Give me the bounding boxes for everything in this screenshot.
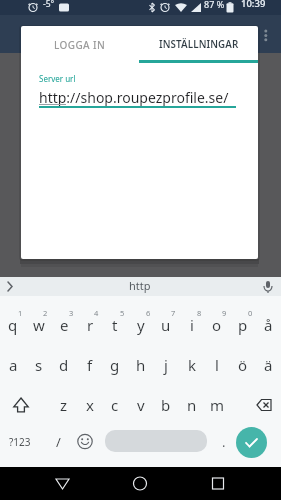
staticText: b (161, 395, 171, 415)
staticText: p (238, 315, 248, 335)
button[interactable]: m (204, 386, 230, 424)
button[interactable] (72, 422, 98, 461)
button[interactable]: q (0, 308, 26, 342)
staticText: / (56, 433, 61, 451)
button[interactable]: p (230, 308, 256, 342)
button[interactable]: t (102, 308, 128, 342)
staticText: r (87, 315, 94, 335)
staticText: c (111, 395, 119, 415)
button[interactable]: i (179, 308, 205, 342)
staticText: n (187, 395, 197, 415)
button[interactable]: k (179, 346, 205, 384)
button[interactable]: ?123 (0, 422, 40, 461)
staticText: 2 (43, 308, 48, 318)
staticText: f (87, 355, 93, 375)
staticText: m (210, 395, 225, 415)
button[interactable] (187, 467, 281, 500)
staticText: v (137, 395, 145, 415)
button[interactable] (0, 467, 93, 500)
staticText: a (9, 355, 18, 375)
staticText: x (86, 395, 94, 415)
staticText: 4 (94, 308, 99, 318)
button[interactable] (0, 277, 20, 296)
button[interactable] (94, 277, 187, 296)
staticText: 9 (222, 308, 227, 318)
button[interactable] (93, 467, 187, 500)
button[interactable] (105, 430, 207, 452)
button[interactable]: ä (255, 346, 281, 384)
staticText: INSTÄLLNINGAR (159, 38, 239, 51)
button[interactable]: INSTÄLLNINGAR (139, 26, 258, 63)
button[interactable] (0, 386, 38, 424)
staticText: h (136, 355, 146, 375)
staticText: q (8, 315, 18, 335)
staticText: 7 (171, 308, 176, 318)
button[interactable]: w (26, 308, 52, 342)
button[interactable]: LOGGA IN (21, 26, 139, 63)
staticText: ö (238, 355, 248, 375)
staticText: 87 % (204, 0, 225, 10)
button[interactable]: f (77, 346, 103, 384)
button[interactable]: d (51, 346, 77, 384)
staticText: i (190, 315, 194, 335)
staticText: ä (264, 355, 273, 375)
button[interactable]: . (213, 422, 235, 461)
staticText: http (129, 278, 151, 293)
staticText: LOGGA IN (54, 38, 106, 52)
button[interactable]: r (77, 308, 103, 342)
staticText: l (215, 355, 219, 375)
button[interactable]: ö (230, 346, 256, 384)
button[interactable] (258, 277, 281, 296)
staticText: u (161, 315, 171, 335)
button[interactable]: b (153, 386, 179, 424)
button[interactable]: http://shop.roupezprofile.se/ (39, 88, 229, 107)
staticText: 8 (197, 308, 202, 318)
button[interactable]: v (128, 386, 154, 424)
button[interactable]: n (179, 386, 205, 424)
button[interactable] (236, 427, 267, 458)
button[interactable]: h (128, 346, 154, 384)
staticText: Server url (39, 73, 76, 84)
staticText: o (212, 315, 222, 335)
button[interactable]: å (255, 308, 281, 342)
button[interactable]: l (204, 346, 230, 384)
button[interactable]: a (0, 346, 26, 384)
staticText: 1 (18, 308, 23, 318)
staticText: ?123 (9, 435, 31, 449)
staticText: y (137, 315, 145, 335)
button[interactable]: e (51, 308, 77, 342)
staticText: w (33, 315, 45, 335)
button[interactable]: s (26, 346, 52, 384)
staticText: k (188, 355, 197, 375)
button[interactable]: / (45, 422, 71, 461)
staticText: j (164, 355, 168, 375)
staticText: 6 (146, 308, 151, 318)
staticText: e (60, 315, 69, 335)
button[interactable]: c (102, 386, 128, 424)
staticText: d (59, 355, 69, 375)
button[interactable]: u (153, 308, 179, 342)
staticText: s (35, 355, 43, 375)
staticText: g (110, 355, 120, 375)
button[interactable] (243, 386, 281, 424)
button[interactable]: z (51, 386, 77, 424)
staticText: 10:39 (241, 0, 266, 10)
button[interactable]: x (77, 386, 103, 424)
staticText: 3 (69, 308, 74, 318)
button[interactable]: g (102, 346, 128, 384)
staticText: z (60, 395, 68, 415)
button[interactable]: o (204, 308, 230, 342)
staticText: 5 (120, 308, 125, 318)
staticText: . (222, 433, 226, 451)
staticText: å (264, 315, 273, 335)
staticText: 0 (248, 308, 253, 318)
button[interactable]: j (153, 346, 179, 384)
staticText: -5° (43, 0, 55, 10)
button[interactable]: y (128, 308, 154, 342)
staticText: t (112, 315, 118, 335)
